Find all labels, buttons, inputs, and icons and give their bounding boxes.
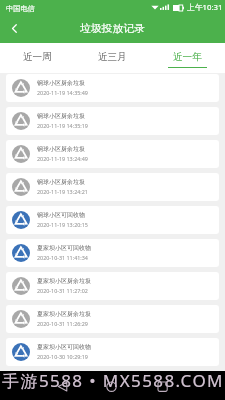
button[interactable]: 近三月 (75, 43, 150, 73)
staticText: 2020-10-31 11:26:29 (37, 320, 88, 327)
button[interactable]: 钢球小区厨余垃圾 (6, 140, 219, 168)
staticText: 夏家坝小区可回收物 (37, 343, 91, 351)
button[interactable]: 钢球小区厨余垃圾 (6, 107, 219, 135)
staticText: 垃圾投放记录 (80, 22, 145, 36)
staticText: 2020-11-19 13:20:15 (37, 221, 88, 228)
staticText: 钢球小区可回收物 (37, 211, 85, 219)
staticText: 夏家坝小区可回收物 (37, 244, 91, 252)
staticText: 上午10:31 (187, 2, 223, 13)
staticText: 钢球小区厨余垃圾 (37, 79, 85, 87)
staticText: 钢球小区厨余垃圾 (37, 112, 85, 120)
staticText: 夏家坝小区厨余垃圾 (37, 310, 91, 318)
staticText: 2020-11-19 14:35:19 (37, 122, 88, 129)
staticText: 近一年 (173, 51, 202, 63)
staticText: 2020-11-19 13:24:21 (37, 188, 88, 195)
staticText: 2020-10-30 10:29:19 (37, 353, 88, 360)
button[interactable]: 钢球小区可回收物 (6, 206, 219, 234)
staticText: 钢球小区厨余垃圾 (37, 178, 85, 186)
staticText: 2020-10-31 11:27:02 (37, 287, 88, 294)
staticText: 近一周 (23, 51, 52, 63)
staticText: 近三月 (98, 51, 127, 63)
staticText: 夏家坝小区厨余垃圾 (37, 277, 91, 285)
button[interactable]: 钢球小区厨余垃圾 (6, 74, 219, 102)
staticText: 2020-11-19 13:24:49 (37, 155, 88, 162)
button[interactable]: 钢球小区厨余垃圾 (6, 173, 219, 201)
staticText: 手游5588 • MX5588.COM (2, 369, 224, 392)
button[interactable]: Back (0, 14, 29, 43)
button[interactable]: 夏家坝小区可回收物 (6, 338, 219, 366)
button[interactable]: 夏家坝小区可回收物 (6, 239, 219, 267)
button[interactable]: 夏家坝小区厨余垃圾 (6, 305, 219, 333)
button[interactable]: 近一周 (0, 43, 75, 73)
staticText: 中国电信 (6, 4, 35, 13)
staticText: 2020-11-19 14:35:49 (37, 89, 88, 96)
button[interactable]: 夏家坝小区厨余垃圾 (6, 272, 219, 300)
button[interactable]: 近一年 (150, 43, 225, 73)
staticText: 钢球小区厨余垃圾 (37, 145, 85, 153)
staticText: 2020-10-31 11:41:34 (37, 254, 88, 261)
